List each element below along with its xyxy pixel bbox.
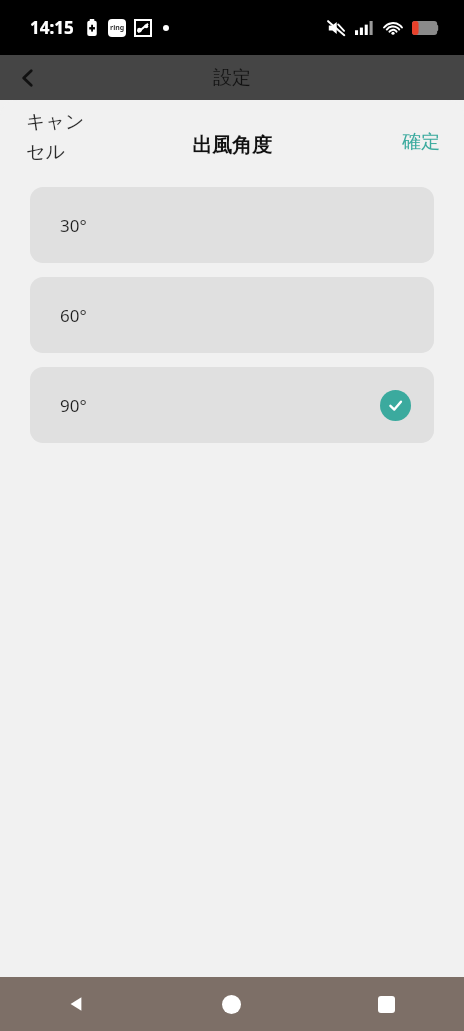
staticText: キャンセル: [26, 110, 102, 164]
button[interactable]: 90°: [30, 367, 434, 443]
button[interactable]: Recent apps: [309, 977, 464, 1031]
staticText: 30°: [60, 214, 87, 237]
staticText: 90°: [60, 394, 87, 417]
staticText: 設定: [213, 66, 251, 90]
staticText: 14:15: [30, 16, 74, 39]
staticText: ring: [110, 23, 125, 33]
button[interactable]: 60°: [30, 277, 434, 353]
staticText: 出風角度: [192, 133, 272, 158]
button[interactable]: Back: [0, 977, 154, 1031]
button[interactable]: 30°: [30, 187, 434, 263]
button[interactable]: キャンセル: [26, 110, 102, 164]
button[interactable]: Home: [154, 977, 309, 1031]
staticText: 60°: [60, 304, 87, 327]
staticText: 確定: [402, 130, 440, 154]
button[interactable]: Back: [6, 56, 50, 100]
button[interactable]: 確定: [402, 130, 440, 154]
